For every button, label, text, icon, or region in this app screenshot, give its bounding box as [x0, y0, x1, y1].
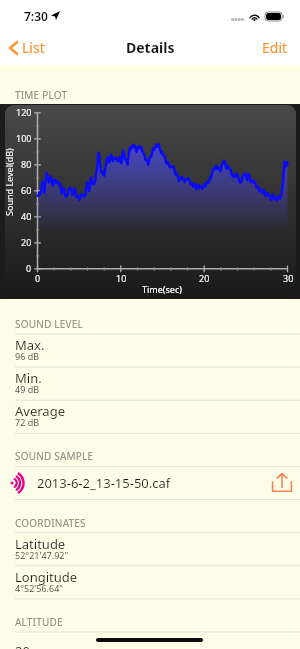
- staticText: Sound Level(dB): [5, 148, 15, 216]
- staticText: 30: [283, 272, 294, 284]
- button[interactable]: Max.: [0, 334, 300, 367]
- staticText: 7:30: [24, 8, 48, 24]
- button[interactable]: Share: [265, 466, 298, 499]
- staticText: ALTITUDE: [15, 615, 63, 629]
- staticText: Max.: [15, 336, 45, 354]
- staticText: 2013-6-2_13-15-50.caf: [37, 474, 171, 492]
- staticText: 52°21'47.92": [15, 549, 69, 561]
- staticText: 80: [21, 158, 32, 170]
- staticText: 60: [21, 184, 32, 196]
- staticText: 120: [16, 106, 32, 118]
- staticText: Min.: [15, 369, 42, 387]
- button[interactable]: Latitude: [0, 533, 300, 566]
- button[interactable]: 20 m: [0, 632, 300, 649]
- staticText: 49 dB: [15, 383, 40, 395]
- staticText: 40: [21, 210, 32, 222]
- staticText: Details: [126, 38, 175, 57]
- staticText: SOUND LEVEL: [15, 317, 83, 331]
- staticText: 20 m: [15, 642, 46, 649]
- staticText: 10: [116, 272, 127, 284]
- button[interactable]: List: [0, 33, 53, 62]
- button[interactable]: Min.: [0, 367, 300, 400]
- staticText: 72 dB: [15, 416, 40, 428]
- staticText: COORDINATES: [15, 516, 86, 530]
- staticText: Longitude: [15, 568, 78, 586]
- staticText: SOUND SAMPLE: [15, 449, 94, 463]
- staticText: List: [22, 38, 45, 57]
- staticText: 0: [35, 272, 41, 284]
- button[interactable]: 2013-6-2_13-15-50.caf: [0, 466, 300, 499]
- staticText: 20: [199, 272, 210, 284]
- staticText: Average: [15, 402, 65, 420]
- staticText: TIME PLOT: [15, 88, 68, 102]
- staticText: Time(sec): [142, 283, 182, 295]
- staticText: 0: [26, 262, 32, 274]
- button[interactable]: Longitude: [0, 566, 300, 599]
- staticText: 96 dB: [15, 350, 40, 362]
- staticText: 20: [21, 236, 32, 248]
- button[interactable]: Edit: [250, 30, 300, 65]
- staticText: 4°52'56.64": [15, 582, 63, 594]
- button[interactable]: Average: [0, 400, 300, 433]
- staticText: 100: [16, 132, 32, 144]
- staticText: Latitude: [15, 535, 66, 553]
